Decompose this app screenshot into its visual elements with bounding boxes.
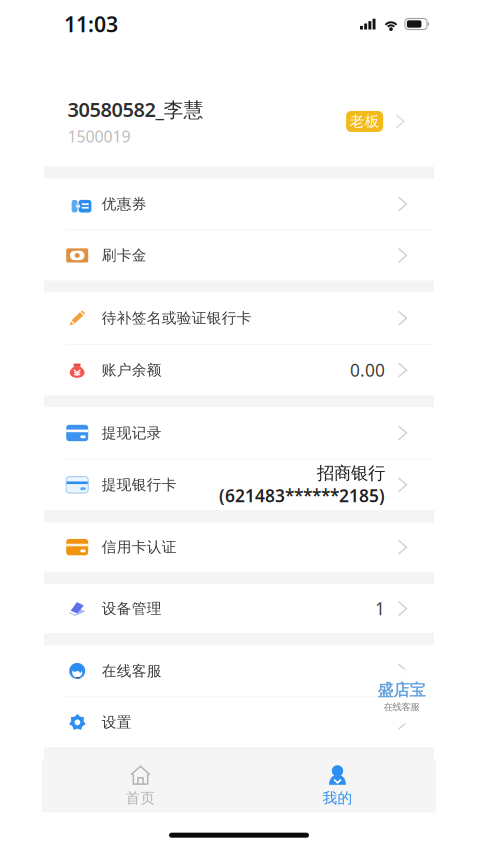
staticText: 1 (375, 597, 385, 620)
staticText: 11:03 (64, 10, 118, 38)
staticText: 招商银行 (317, 463, 385, 484)
button[interactable]: 信用卡认证 (44, 523, 434, 572)
button[interactable]: 优惠券 (44, 178, 434, 229)
staticText: 在线客服 (102, 662, 162, 680)
button[interactable]: 在线客服 (374, 669, 429, 724)
staticText: 设备管理 (102, 600, 162, 618)
button[interactable]: 设备管理 (44, 584, 434, 633)
staticText: 老板 (350, 112, 380, 130)
staticText: 盛店宝 (377, 680, 425, 700)
staticText: 刷卡金 (102, 246, 147, 264)
staticText: 0.00 (350, 358, 385, 381)
staticText: 我的 (322, 789, 352, 807)
staticText: 账户余额 (102, 361, 162, 379)
button[interactable]: 我的 (239, 760, 436, 813)
staticText: 设置 (102, 713, 132, 731)
staticText: 1500019 (67, 126, 130, 147)
button[interactable]: 设置 (44, 697, 434, 747)
button[interactable]: 待补签名或验证银行卡 (44, 292, 434, 344)
staticText: 提现银行卡 (102, 476, 177, 494)
button[interactable]: 30580582_李慧 (0, 48, 478, 166)
staticText: 提现记录 (102, 424, 162, 442)
staticText: 优惠券 (102, 195, 147, 213)
button[interactable]: 首页 (42, 760, 239, 813)
button[interactable]: 在线客服 (44, 646, 434, 696)
button[interactable]: 提现银行卡 (44, 460, 434, 510)
staticText: 首页 (125, 789, 155, 807)
button[interactable]: 账户余额 (44, 345, 434, 395)
staticText: (621483******2185) (219, 484, 385, 507)
staticText: 30580582_李慧 (67, 96, 203, 123)
button[interactable]: 提现记录 (44, 407, 434, 459)
staticText: 待补签名或验证银行卡 (102, 309, 252, 327)
staticText: 在线客服 (383, 701, 419, 713)
button[interactable]: 刷卡金 (44, 230, 434, 280)
staticText: 信用卡认证 (102, 538, 177, 556)
